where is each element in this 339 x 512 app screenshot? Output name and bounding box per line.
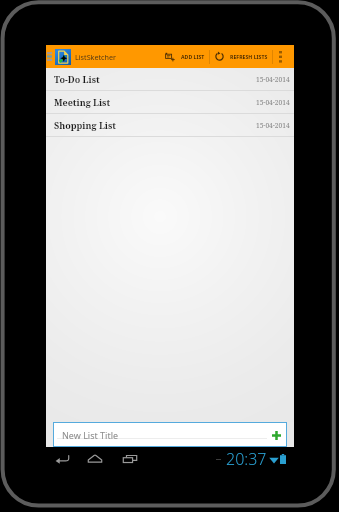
button[interactable]: ADD LIST xyxy=(161,45,209,68)
staticText: Meeting List xyxy=(54,96,111,108)
staticText: 15-04-2014 xyxy=(256,121,290,130)
button[interactable]: Shopping List xyxy=(46,114,294,136)
staticText: ADD LIST xyxy=(181,53,205,60)
staticText: To-Do List xyxy=(54,73,100,85)
staticText: 15-04-2014 xyxy=(256,98,290,107)
staticText: 20:37 xyxy=(226,448,267,470)
button[interactable]: Recent apps xyxy=(121,450,139,468)
button[interactable]: REFRESH LISTS xyxy=(210,45,272,68)
staticText: New List Title xyxy=(62,429,119,441)
button[interactable]: Meeting List xyxy=(46,91,294,113)
button[interactable]: More options xyxy=(273,45,287,68)
button[interactable]: Back xyxy=(53,450,71,468)
staticText: Shopping List xyxy=(54,119,116,131)
button[interactable]: To-Do List xyxy=(46,68,294,90)
staticText: REFRESH LISTS xyxy=(230,53,268,60)
button[interactable]: Home xyxy=(86,450,104,468)
staticText: ListSketcher xyxy=(75,52,117,62)
button[interactable]: Add list xyxy=(266,425,286,445)
staticText: 15-04-2014 xyxy=(256,75,290,84)
